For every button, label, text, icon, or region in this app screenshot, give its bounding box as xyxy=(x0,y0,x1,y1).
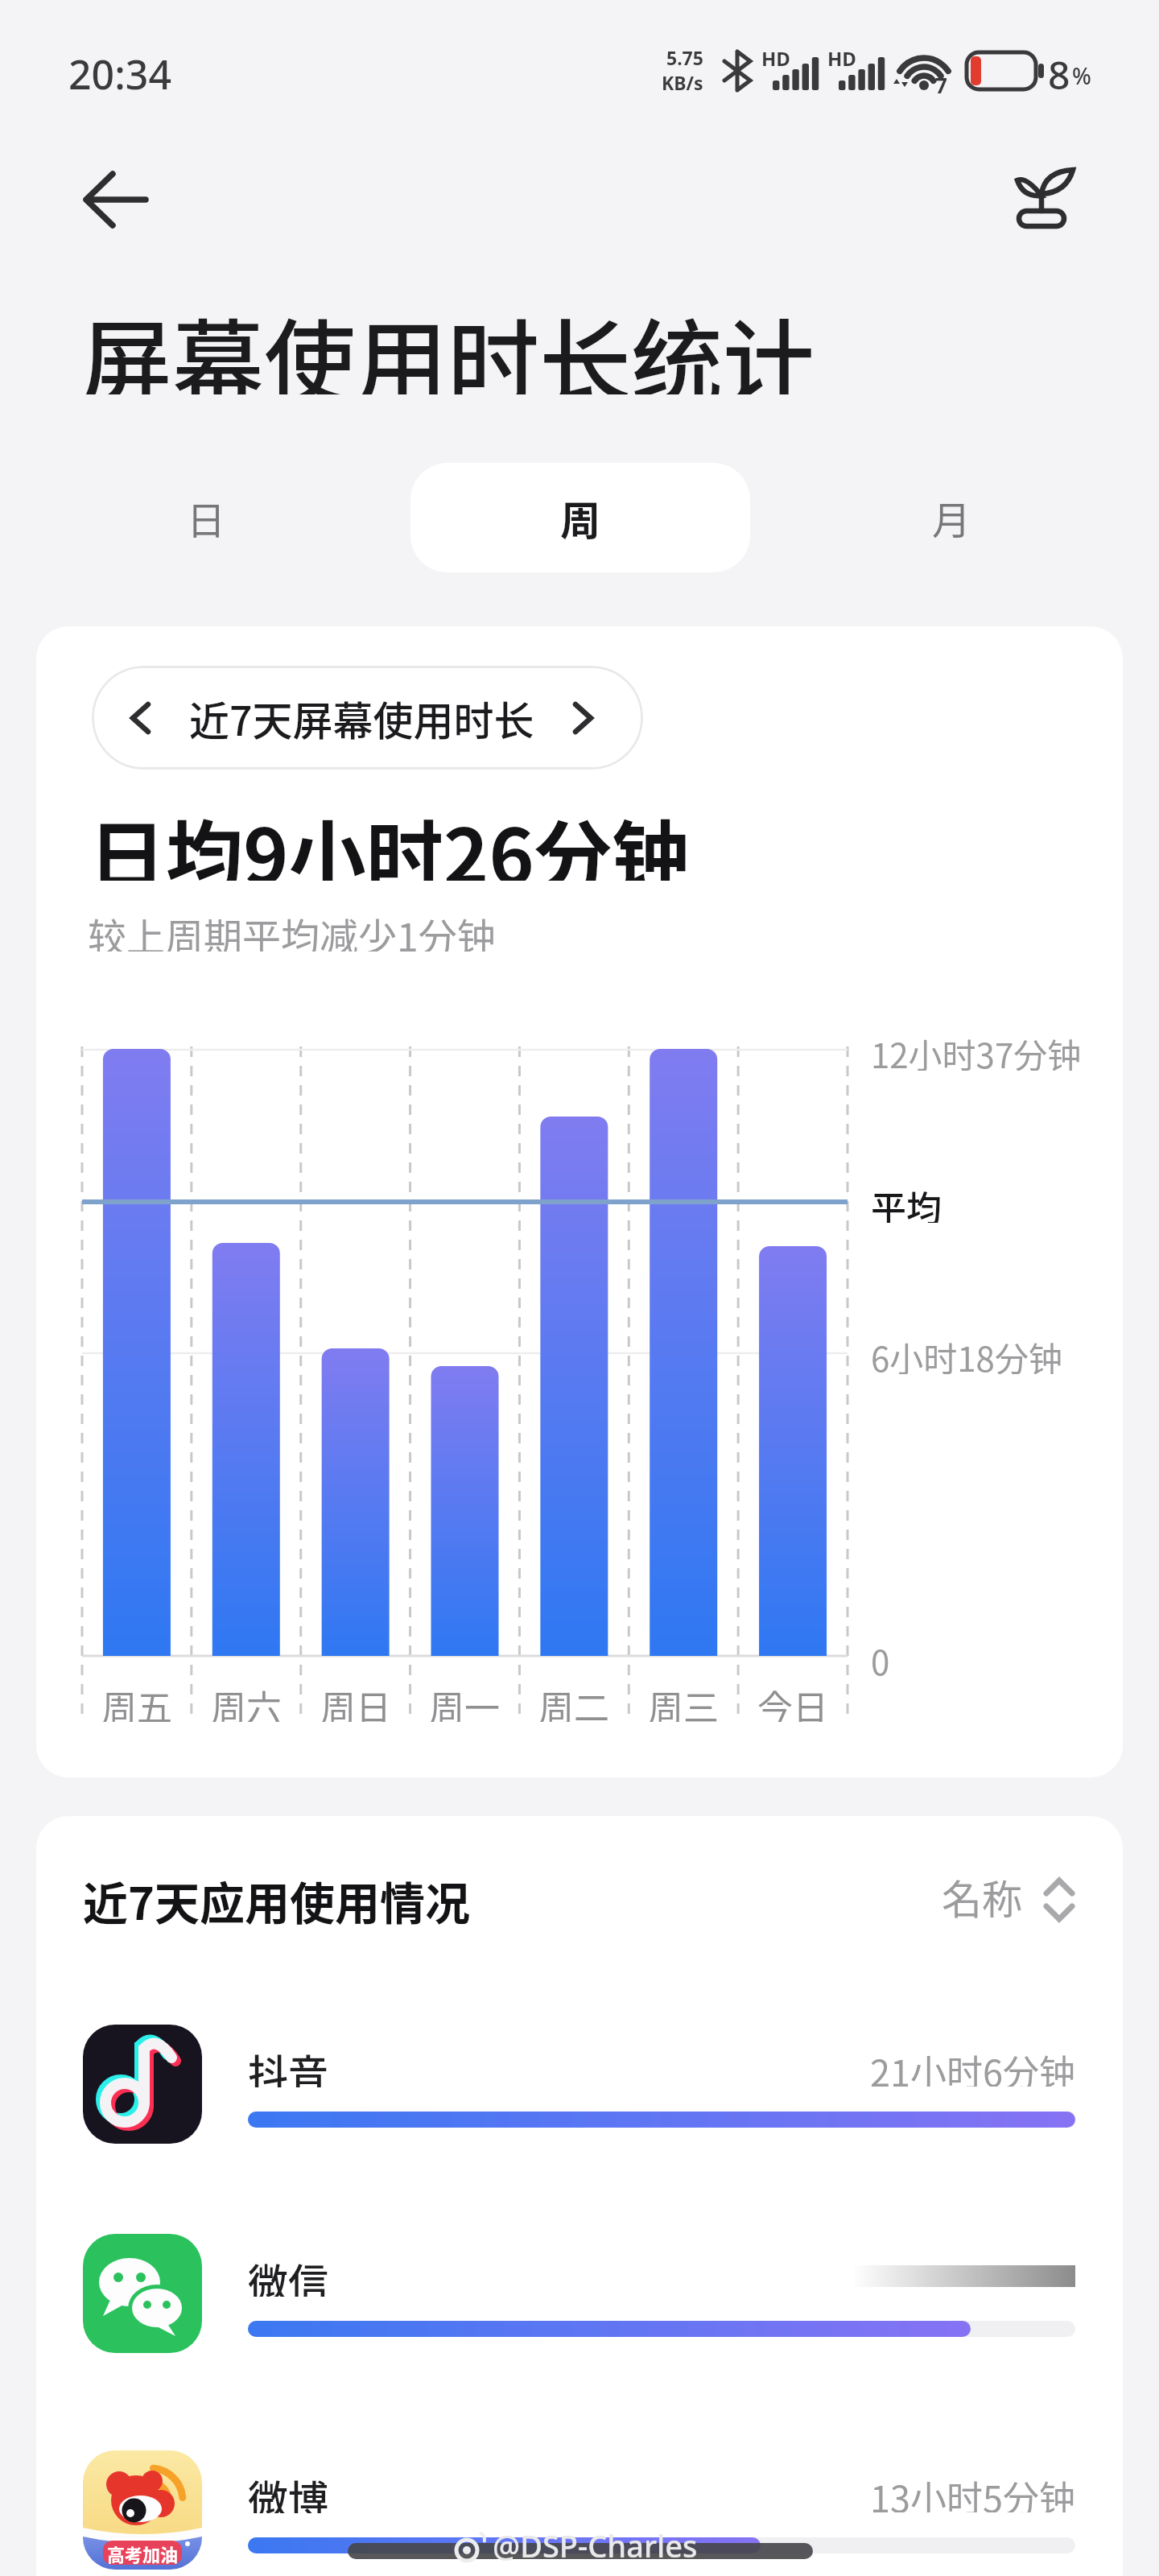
staticText: HD xyxy=(827,45,856,71)
staticText: HD xyxy=(761,45,790,71)
button[interactable]: 周 xyxy=(410,463,750,572)
staticText: 12小时37分钟 xyxy=(871,1029,1082,1071)
staticText: 近7天屏幕使用时长 xyxy=(189,689,534,747)
staticText: 周五 xyxy=(101,1680,172,1722)
staticText: 微信 xyxy=(248,2252,328,2297)
staticText: 平均 xyxy=(871,1181,942,1223)
staticText: 日 xyxy=(187,489,226,546)
staticText: % xyxy=(1072,60,1091,91)
staticText: 周 xyxy=(560,489,600,547)
staticText: 周二 xyxy=(538,1680,609,1722)
staticText: 周三 xyxy=(648,1680,719,1722)
staticText: 近7天应用使用情况 xyxy=(83,1868,471,1929)
staticText: 高考加油 xyxy=(107,2541,179,2565)
staticText: 抖音 xyxy=(248,2042,328,2087)
staticText: 周日 xyxy=(320,1680,391,1722)
staticText: 名称 xyxy=(942,1868,1022,1921)
staticText: 月 xyxy=(932,489,971,546)
staticText: 今日 xyxy=(757,1680,828,1722)
staticText: 8 xyxy=(1048,48,1070,92)
button[interactable] xyxy=(64,2205,1103,2382)
staticText: 微博 xyxy=(248,2468,328,2513)
button[interactable] xyxy=(998,149,1095,246)
staticText: 20:34 xyxy=(68,47,171,92)
staticText: 屏幕使用时长统计 xyxy=(80,290,815,394)
button[interactable]: 日 xyxy=(129,463,283,572)
button[interactable] xyxy=(64,1996,1103,2173)
staticText: 周六 xyxy=(211,1680,282,1722)
staticText: 13小时5分钟 xyxy=(870,2471,1075,2512)
staticText: @DSP-Charles xyxy=(493,2524,698,2566)
staticText: 6小时18分钟 xyxy=(871,1332,1062,1374)
button[interactable]: 近7天屏幕使用时长 xyxy=(92,666,643,770)
staticText: KB/s xyxy=(662,70,703,93)
staticText: 周一 xyxy=(429,1680,500,1722)
button[interactable]: 名称 xyxy=(926,1860,1087,1932)
staticText: 日均9小时26分钟 xyxy=(89,795,689,881)
staticText: 7 xyxy=(935,71,947,98)
staticText: 5.75 xyxy=(666,45,703,70)
staticText: 0 xyxy=(871,1636,890,1678)
button[interactable] xyxy=(64,157,169,242)
button[interactable]: 月 xyxy=(874,463,1029,572)
staticText: 21小时6分钟 xyxy=(870,2045,1075,2087)
staticText: 较上周期平均减少1分钟 xyxy=(88,906,496,952)
button[interactable] xyxy=(64,2421,1103,2576)
